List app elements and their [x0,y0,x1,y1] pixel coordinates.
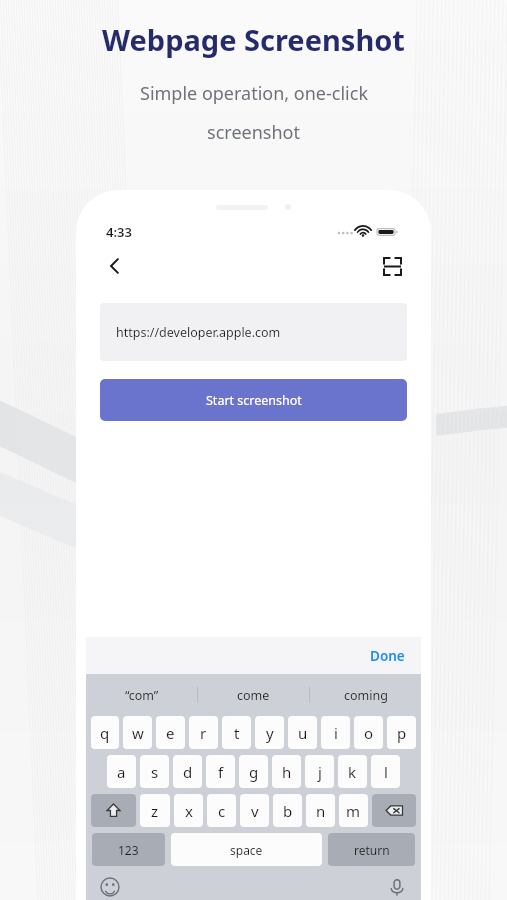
staticText: g [249,762,259,782]
staticText: d [183,762,193,782]
button[interactable]: w [123,716,152,749]
button[interactable]: d [173,755,202,788]
staticText: Simple operation, one-click [140,81,368,106]
staticText: w [132,723,144,743]
button[interactable]: https://developer.apple.com [100,303,407,361]
staticText: o [364,723,374,743]
button[interactable]: l [371,755,400,788]
button[interactable]: t [222,716,251,749]
staticText: c [218,801,226,821]
staticText: j [318,762,322,782]
button[interactable]: “com” [86,674,197,716]
staticText: 123 [118,842,139,858]
button[interactable]: a [107,755,136,788]
button[interactable]: c [207,794,236,827]
button[interactable]: Emoji [98,875,122,899]
staticText: b [283,801,293,821]
staticText: coming [344,687,388,704]
button[interactable]: u [288,716,317,749]
staticText: n [316,801,326,821]
button[interactable]: m [339,794,368,827]
button[interactable]: k [338,755,367,788]
staticText: x [185,801,193,821]
staticText: come [237,687,270,704]
button[interactable]: y [255,716,284,749]
staticText: https://developer.apple.com [116,324,281,341]
staticText: “com” [125,687,159,704]
button[interactable]: space [171,833,322,866]
staticText: v [251,801,259,821]
button[interactable]: Start screenshot [100,379,407,421]
button[interactable]: Back [98,249,132,283]
staticText: s [151,762,159,782]
button[interactable]: p [387,716,416,749]
button[interactable]: g [239,755,268,788]
button[interactable]: s [140,755,169,788]
button[interactable]: come [198,674,309,716]
staticText: q [100,723,110,743]
button[interactable]: i [321,716,350,749]
staticText: e [166,723,175,743]
staticText: t [234,723,240,743]
button[interactable]: Dictate [385,875,409,899]
staticText: a [117,762,126,782]
staticText: r [200,723,207,743]
staticText: h [282,762,292,782]
button[interactable]: f [206,755,235,788]
button[interactable]: h [272,755,301,788]
button[interactable]: Done [354,641,421,671]
staticText: return [354,842,390,858]
button[interactable]: Backspace [372,794,416,827]
button[interactable]: Scan [375,249,409,283]
button[interactable]: v [240,794,269,827]
button[interactable]: q [91,716,119,749]
staticText: 4:33 [106,223,132,241]
button[interactable]: z [140,794,170,827]
button[interactable]: r [189,716,218,749]
staticText: z [151,801,159,821]
button[interactable]: j [305,755,334,788]
button[interactable]: o [354,716,383,749]
staticText: space [230,842,263,858]
staticText: y [266,723,274,743]
staticText: m [346,801,361,821]
staticText: Start screenshot [206,392,302,409]
button[interactable]: n [306,794,335,827]
button[interactable]: Shift [91,794,136,827]
button[interactable]: e [156,716,185,749]
staticText: u [298,723,308,743]
staticText: f [218,762,224,782]
button[interactable]: x [174,794,203,827]
staticText: screenshot [207,120,300,145]
staticText: Done [370,647,405,665]
button[interactable]: coming [310,674,421,716]
staticText: Webpage Screenshot [102,20,405,59]
staticText: p [397,723,407,743]
button[interactable]: return [328,833,415,866]
button[interactable]: 123 [92,833,165,866]
staticText: l [384,762,388,782]
button[interactable]: b [273,794,302,827]
staticText: k [348,762,357,782]
staticText: i [334,723,338,743]
